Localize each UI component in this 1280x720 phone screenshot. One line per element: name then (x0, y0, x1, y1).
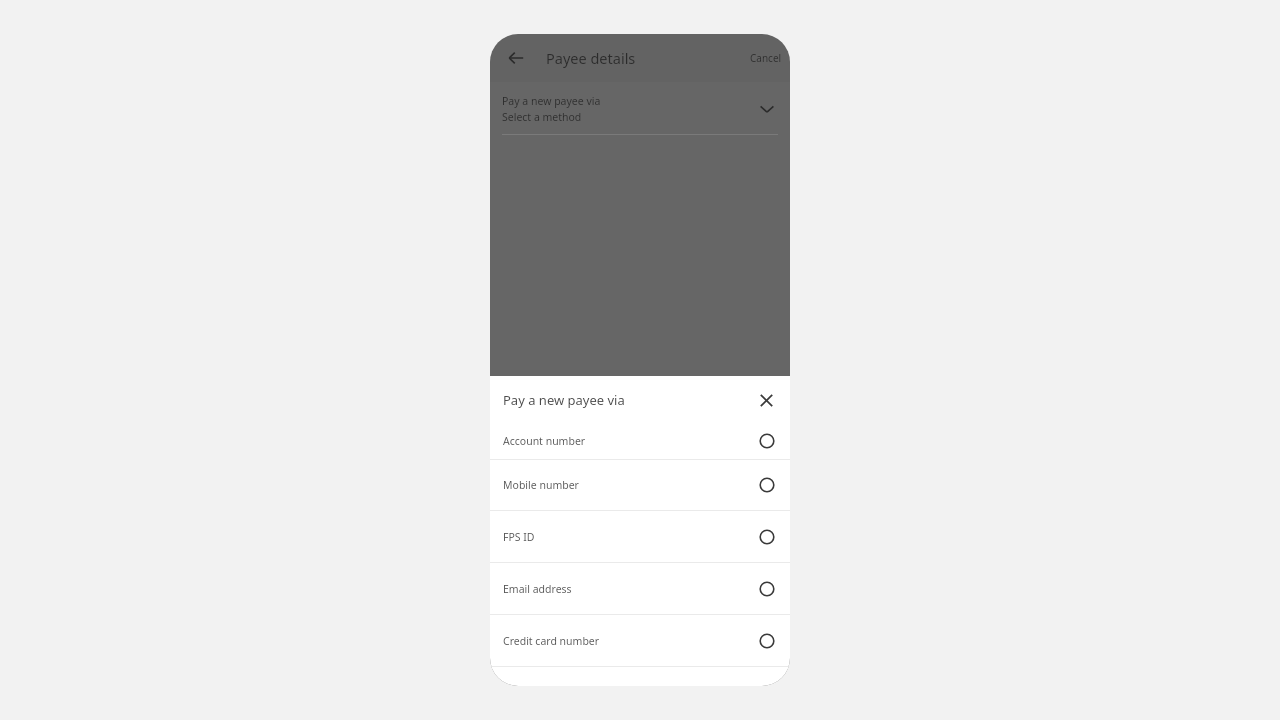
staticText: Payee details (546, 48, 636, 68)
button[interactable]: Cancel (742, 45, 790, 71)
staticText: FPS ID (503, 530, 757, 544)
staticText: Pay a new payee via (502, 94, 601, 108)
staticText: Mobile number (503, 478, 757, 492)
button[interactable]: Pay a new payee via (490, 94, 790, 135)
button[interactable]: Email address (490, 563, 790, 614)
button[interactable]: FPS ID (490, 511, 790, 562)
staticText: Pay a new payee via (503, 391, 625, 409)
staticText: Email address (503, 582, 757, 596)
staticText: Credit card number (503, 634, 757, 648)
staticText: Select a method (502, 110, 582, 124)
button[interactable]: Mobile number (490, 460, 790, 510)
button[interactable]: Credit card number (490, 615, 790, 666)
staticText: Cancel (750, 51, 782, 65)
button[interactable]: Account number (490, 423, 790, 459)
button[interactable]: Back (498, 40, 534, 76)
staticText: Account number (503, 434, 757, 448)
button[interactable]: Close (752, 386, 780, 414)
other: Expand (756, 98, 778, 120)
